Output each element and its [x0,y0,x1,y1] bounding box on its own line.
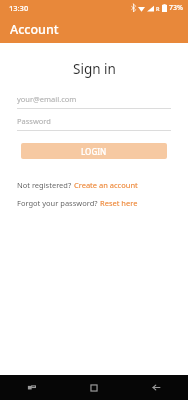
button[interactable]: Recent apps [0,375,62,400]
staticText: your@email.com [17,94,77,104]
button[interactable]: LOGIN [21,143,167,159]
staticText: Reset here [100,198,138,208]
button[interactable]: Home [62,375,125,400]
button[interactable]: Password [17,114,171,131]
staticText: 13:30 [9,3,29,13]
button[interactable]: Back [125,375,188,400]
button[interactable]: your@email.com [17,92,171,109]
staticText: Create an account [74,180,138,190]
staticText: Forgot your password? [17,198,100,208]
button[interactable]: Create an account [74,180,138,190]
staticText: Password [17,116,51,126]
staticText: Sign in [73,60,116,78]
staticText: Account [10,21,59,38]
staticText: LOGIN [81,146,107,157]
staticText: Not registered? [17,180,74,190]
staticText: 73% [169,3,183,13]
button[interactable]: Reset here [100,198,138,208]
staticText: R [156,5,160,12]
